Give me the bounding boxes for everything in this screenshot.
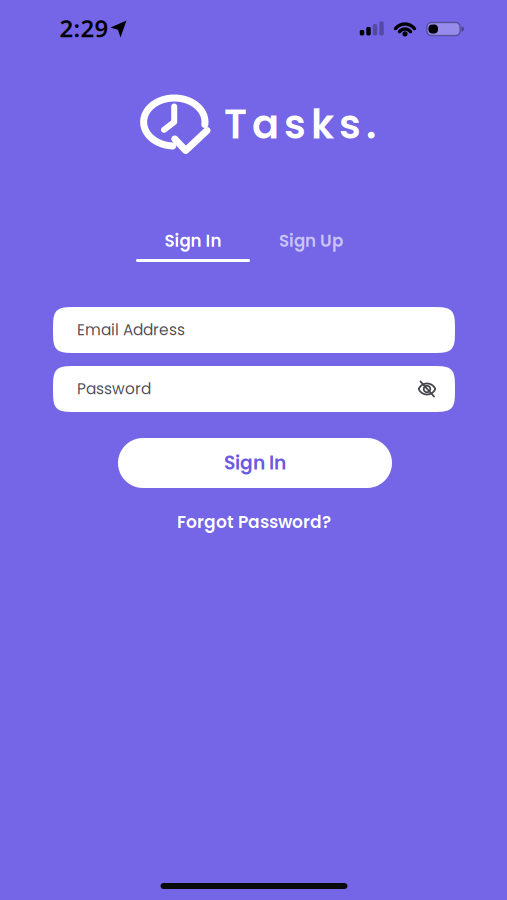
button[interactable]: Email Address	[53, 307, 455, 353]
staticText: Sign Up	[279, 229, 343, 253]
button[interactable]: Forgot Password?	[177, 505, 331, 539]
button[interactable]: Show password	[408, 370, 444, 406]
staticText: Sign In	[224, 450, 286, 476]
staticText: 2:29	[59, 12, 108, 44]
staticText: Password	[77, 378, 151, 400]
button[interactable]: Sign Up	[254, 221, 368, 261]
button[interactable]: Sign In	[118, 438, 392, 488]
button[interactable]: Sign In	[136, 221, 250, 261]
staticText: Email Address	[77, 319, 185, 341]
staticText: Forgot Password?	[177, 510, 331, 534]
staticText: Tasks.	[224, 96, 376, 152]
staticText: Sign In	[164, 229, 221, 253]
button[interactable]: Password	[53, 366, 455, 412]
